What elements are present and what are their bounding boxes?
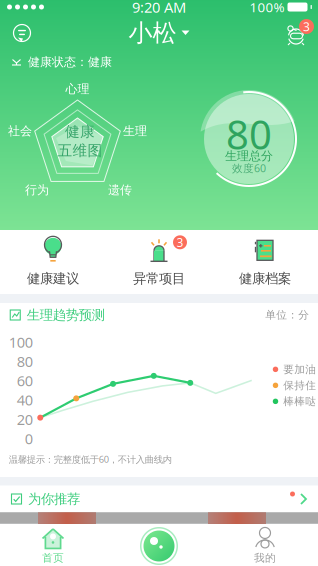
button[interactable]: 首页 xyxy=(0,524,106,566)
staticText: 我的 xyxy=(254,551,276,564)
staticText: 遗传 xyxy=(108,183,132,197)
staticText: 0 xyxy=(25,429,33,448)
staticText: 五维图 xyxy=(57,141,102,159)
staticText: 9:20 AM xyxy=(132,0,186,17)
button[interactable]: 小松助手 xyxy=(106,524,212,566)
staticText: 要加油 xyxy=(283,363,316,376)
staticText: 异常项目 xyxy=(133,270,185,287)
button[interactable]: 健康建议 xyxy=(0,230,106,294)
staticText: 棒棒哒 xyxy=(283,395,316,408)
button[interactable]: 3 xyxy=(106,230,212,294)
staticText: 40 xyxy=(17,390,33,410)
button[interactable]: 小松 xyxy=(128,16,189,50)
staticText: 单位：分 xyxy=(265,308,309,321)
staticText: 首页 xyxy=(42,551,64,564)
staticText: 20 xyxy=(17,409,33,429)
staticText: 社会 xyxy=(8,124,32,138)
button[interactable]: 消息 xyxy=(0,16,44,50)
staticText: 生理趋势预测 xyxy=(27,307,105,323)
staticText: 100 xyxy=(9,332,33,352)
staticText: 健康 xyxy=(65,122,95,140)
staticText: 80 xyxy=(17,352,33,371)
staticText: 心理 xyxy=(65,82,89,96)
staticText: 生理总分 xyxy=(225,149,273,163)
staticText: 80 xyxy=(226,107,272,160)
staticText: 保持住 xyxy=(283,379,316,392)
button[interactable]: 提醒 xyxy=(274,16,318,50)
button[interactable]: 我的 xyxy=(212,524,318,566)
staticText: 3 xyxy=(303,18,310,34)
button[interactable]: 健康档案 xyxy=(212,230,318,294)
staticText: 健康档案 xyxy=(239,270,291,287)
staticText: 健康状态：健康 xyxy=(28,55,112,69)
staticText: 生理 xyxy=(123,124,147,138)
staticText: 60 xyxy=(17,371,33,390)
staticText: 温馨提示：完整度低于60，不计入曲线内 xyxy=(9,453,172,465)
staticText: 效度60 xyxy=(232,161,266,175)
staticText: 3 xyxy=(176,234,183,250)
staticText: 小松 xyxy=(128,18,176,48)
staticText: 行为 xyxy=(25,183,49,197)
button[interactable]: 为你推荐 xyxy=(0,485,318,512)
staticText: 健康建议 xyxy=(27,270,79,287)
staticText: 100% xyxy=(249,0,284,16)
staticText: 为你推荐 xyxy=(28,491,80,507)
